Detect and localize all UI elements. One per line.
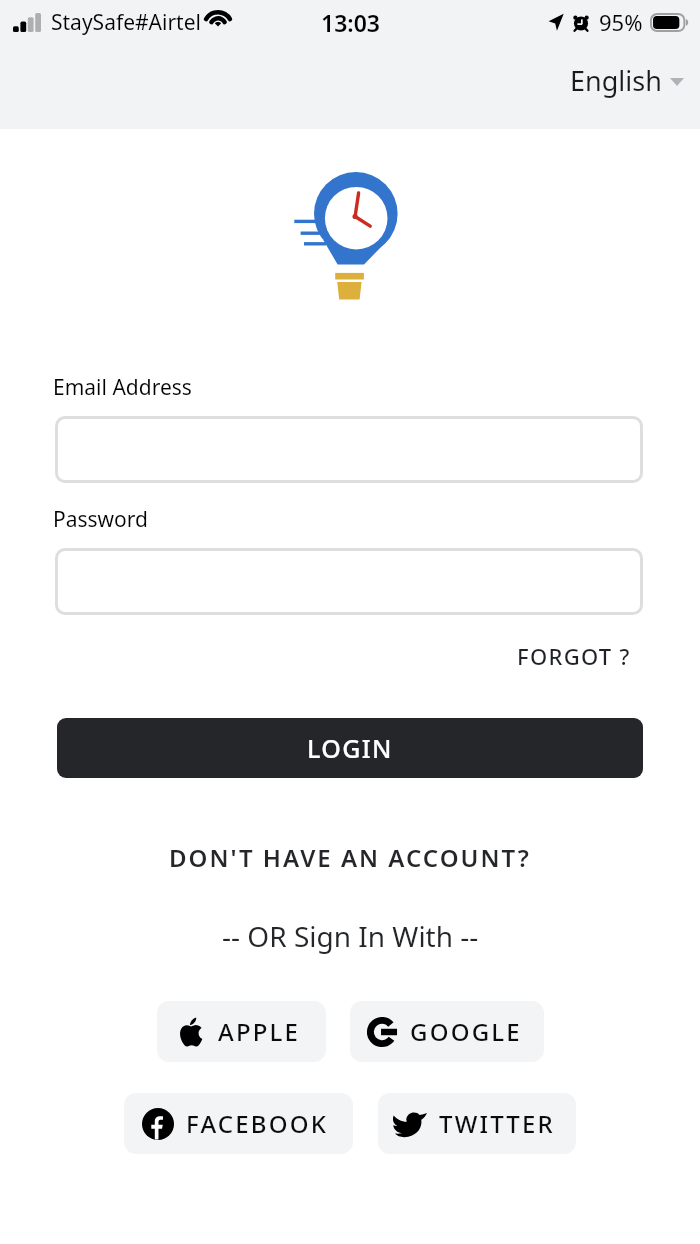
- button[interactable]: FORGOT ?: [491, 638, 631, 674]
- staticText: Password: [53, 505, 148, 534]
- button[interactable]: LOGIN: [57, 718, 643, 778]
- button[interactable]: FACEBOOK: [124, 1093, 353, 1154]
- button[interactable]: English: [570, 62, 684, 99]
- button[interactable]: TWITTER: [378, 1093, 576, 1154]
- staticText: LOGIN: [307, 731, 393, 765]
- button[interactable]: GOOGLE: [350, 1001, 544, 1062]
- staticText: StaySafe#Airtel: [51, 8, 201, 37]
- staticText: English: [570, 62, 662, 99]
- button[interactable]: APPLE: [157, 1001, 326, 1062]
- button[interactable]: Password input: [55, 548, 643, 615]
- staticText: 13:03: [321, 7, 380, 38]
- staticText: GOOGLE: [410, 1015, 522, 1048]
- button[interactable]: Email Address input: [55, 416, 643, 483]
- staticText: FACEBOOK: [186, 1107, 329, 1140]
- staticText: APPLE: [218, 1015, 301, 1048]
- staticText: Email Address: [53, 373, 192, 402]
- staticText: FORGOT ?: [517, 641, 631, 671]
- button[interactable]: DON'T HAVE AN ACCOUNT?: [0, 838, 700, 876]
- staticText: TWITTER: [439, 1107, 555, 1140]
- staticText: 95%: [599, 7, 643, 37]
- staticText: DON'T HAVE AN ACCOUNT?: [169, 841, 531, 874]
- staticText: -- OR Sign In With --: [222, 917, 479, 955]
